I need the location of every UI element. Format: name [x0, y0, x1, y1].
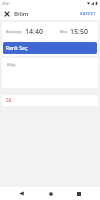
- staticText: Sil: [6, 97, 12, 104]
- button[interactable]: Recents: [72, 187, 85, 200]
- staticText: 14:40: [25, 27, 43, 37]
- staticText: Başlangıç: [6, 29, 23, 34]
- staticText: Renk Seç: [6, 45, 28, 52]
- button[interactable]: Home: [44, 187, 57, 200]
- staticText: 09:21: [2, 2, 11, 6]
- staticText: Bitiş: [60, 29, 68, 34]
- button[interactable]: Sil: [2, 95, 98, 106]
- staticText: Bilgi: [7, 62, 16, 68]
- button[interactable]: Bitiş: [60, 22, 98, 41]
- staticText: 15:50: [70, 27, 88, 37]
- button[interactable]: KAYDET: [76, 8, 100, 20]
- button[interactable]: Bilgi: [2, 58, 98, 88]
- staticText: KAYDET: [80, 11, 96, 17]
- button[interactable]: Back: [15, 187, 28, 200]
- button[interactable]: Close: [0, 8, 13, 20]
- button[interactable]: Renk Seç: [3, 42, 97, 54]
- button[interactable]: Başlangıç: [2, 22, 60, 41]
- staticText: Bilim: [14, 10, 29, 18]
